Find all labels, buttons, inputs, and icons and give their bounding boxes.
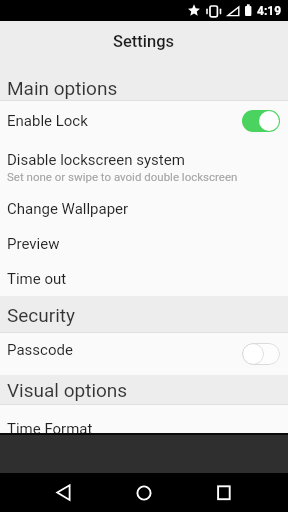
button[interactable]: Enable Lock <box>0 101 288 140</box>
button[interactable] <box>242 343 280 365</box>
staticText: Time Format <box>7 420 93 433</box>
staticText: Disable lockscreen system <box>7 151 185 169</box>
button[interactable] <box>40 473 80 512</box>
staticText: Main options <box>7 77 118 99</box>
button[interactable]: Change Wallpaper <box>0 191 288 226</box>
staticText: Settings <box>113 32 175 51</box>
staticText: Time out <box>7 270 67 288</box>
button[interactable]: Passcode <box>0 333 288 375</box>
button[interactable]: Disable lockscreen system <box>0 140 288 191</box>
staticText: Passcode <box>7 341 73 359</box>
staticText: Security <box>7 304 76 326</box>
button[interactable] <box>124 473 164 512</box>
staticText: Enable Lock <box>7 112 88 130</box>
button[interactable] <box>242 110 280 132</box>
button[interactable] <box>204 473 244 512</box>
staticText: Set none or swipe to avoid double locksc… <box>7 170 238 183</box>
staticText: Preview <box>7 235 60 253</box>
button[interactable]: Time out <box>0 261 288 296</box>
staticText: 4:19 <box>257 4 282 18</box>
staticText: Visual options <box>7 379 128 401</box>
button[interactable]: Preview <box>0 226 288 261</box>
staticText: Change Wallpaper <box>7 200 129 218</box>
button[interactable]: Time Format <box>0 405 288 433</box>
